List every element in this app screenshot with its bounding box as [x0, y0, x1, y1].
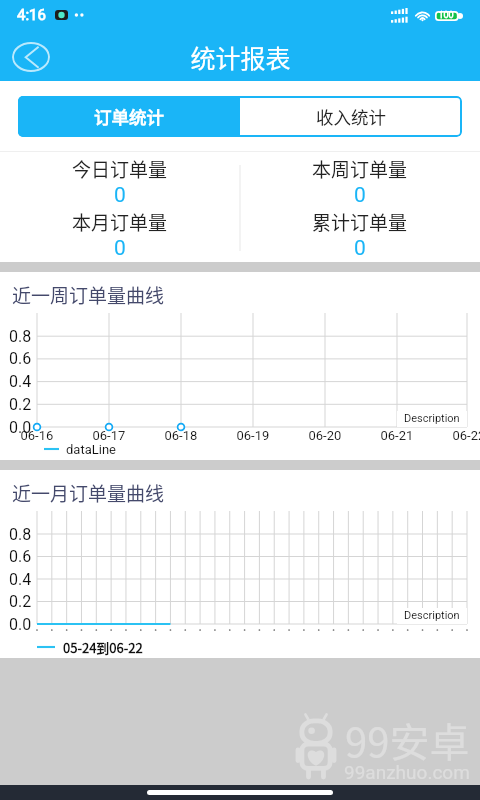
staticText: 收入统计 — [316, 104, 386, 129]
button[interactable]: 收入统计 — [240, 96, 462, 137]
button[interactable]: Back — [12, 42, 50, 72]
staticText: 订单统计 — [94, 104, 164, 129]
staticText: 统计报表 — [190, 39, 291, 75]
staticText: 4:16 — [17, 6, 46, 24]
staticText: 100 — [438, 10, 454, 21]
button[interactable]: 订单统计 — [18, 96, 240, 137]
